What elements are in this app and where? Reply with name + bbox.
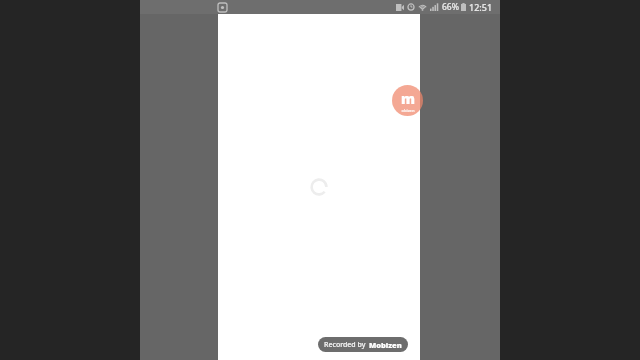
staticText: Recorded by [324, 340, 366, 350]
staticText: 66% [442, 1, 459, 13]
other: Messaging notification [218, 3, 227, 12]
staticText: m [401, 89, 415, 108]
staticText: 12:51 [469, 1, 493, 13]
staticText: Mobizen [369, 340, 402, 350]
staticText: obizen [401, 108, 415, 113]
